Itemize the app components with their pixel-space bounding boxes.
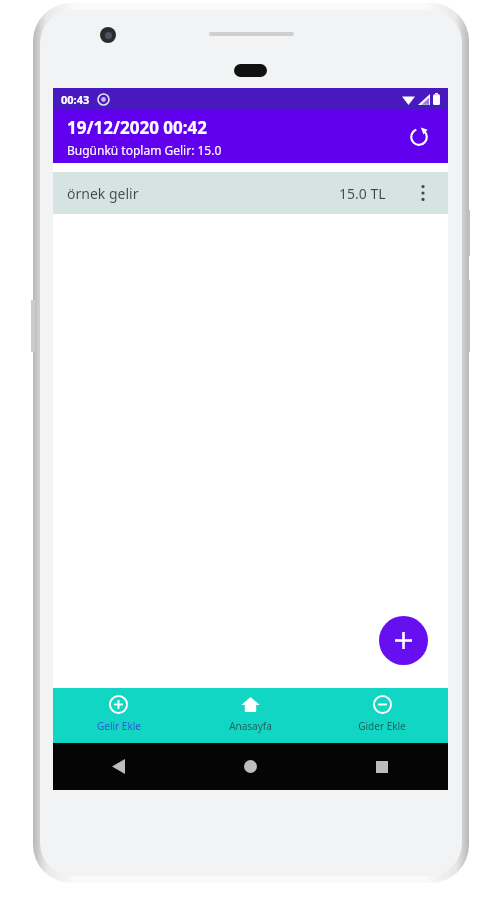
staticText: örnek gelir	[67, 184, 139, 203]
staticText: Gelir Ekle	[97, 719, 141, 733]
button[interactable]: örnek gelir	[53, 172, 448, 214]
button[interactable]: Refresh	[400, 118, 438, 156]
staticText: Anasayfa	[229, 719, 272, 733]
staticText: Bugünkü toplam Gelir: 15.0	[67, 142, 222, 158]
button[interactable]: Gider Ekle	[316, 688, 448, 743]
staticText: Gider Ekle	[358, 719, 406, 733]
button[interactable]: Back	[53, 743, 184, 790]
staticText: 00:43	[61, 92, 90, 107]
button[interactable]: Anasayfa	[184, 688, 316, 743]
button[interactable]: Gelir Ekle	[53, 688, 184, 743]
button[interactable]: Recent apps	[316, 743, 448, 790]
button[interactable]: Add	[379, 616, 428, 665]
staticText: 19/12/2020 00:42	[67, 116, 207, 139]
staticText: 15.0 TL	[339, 184, 386, 203]
button[interactable]: Home	[184, 743, 316, 790]
button[interactable]: More options	[412, 176, 434, 210]
